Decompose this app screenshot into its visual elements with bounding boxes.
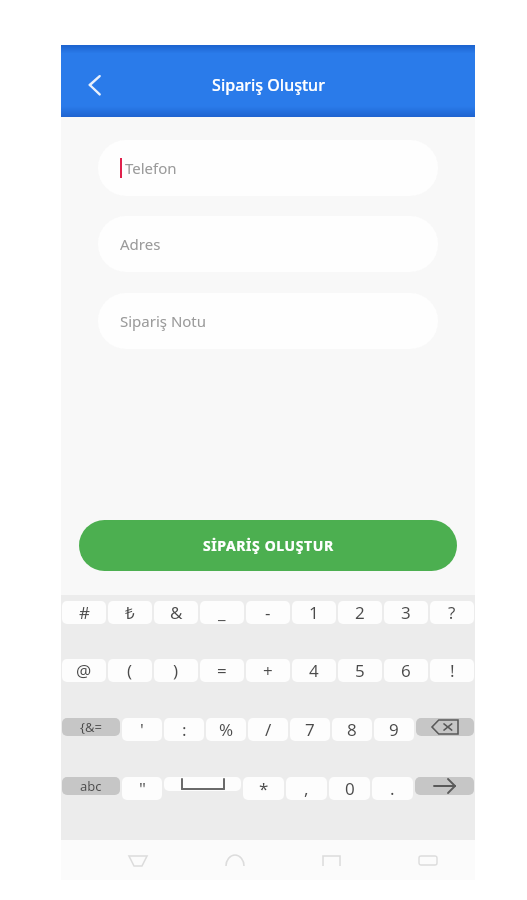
staticText: " <box>139 777 146 800</box>
button[interactable]: & <box>154 601 198 624</box>
button[interactable]: 9 <box>374 718 414 741</box>
button[interactable]: Sipariş Notu <box>98 293 438 349</box>
button[interactable]: . <box>372 777 413 800</box>
button[interactable]: 8 <box>332 718 372 741</box>
button[interactable]: _ <box>200 601 244 624</box>
button[interactable]: ! <box>430 659 474 682</box>
staticText: _ <box>218 601 226 624</box>
staticText: Telefon <box>125 158 177 178</box>
staticText: 0 <box>345 777 355 800</box>
staticText: ? <box>448 601 456 624</box>
button[interactable]: % <box>206 718 246 741</box>
button[interactable]: = <box>200 659 244 682</box>
staticText: , <box>304 777 309 800</box>
staticText: 3 <box>401 601 411 624</box>
button[interactable]: / <box>248 718 288 741</box>
button[interactable]: Back <box>121 850 155 870</box>
button[interactable]: {&= <box>62 718 120 736</box>
button[interactable]: 1 <box>292 601 336 624</box>
staticText: 1 <box>309 601 319 624</box>
button[interactable]: 2 <box>338 601 382 624</box>
button[interactable]: abc <box>62 777 120 795</box>
button[interactable]: ) <box>154 659 198 682</box>
staticText: @ <box>76 659 92 682</box>
staticText: = <box>217 659 227 682</box>
button[interactable]: Space <box>164 777 241 791</box>
staticText: ) <box>173 659 179 682</box>
button[interactable]: 7 <box>290 718 330 741</box>
button[interactable]: 3 <box>384 601 428 624</box>
staticText: ! <box>450 659 455 682</box>
button[interactable]: Back <box>69 59 121 111</box>
staticText: Adres <box>120 234 161 254</box>
staticText: 7 <box>305 718 315 741</box>
button[interactable]: ₺ <box>108 601 152 624</box>
button[interactable]: ' <box>122 718 162 741</box>
staticText: . <box>390 777 395 800</box>
staticText: - <box>265 601 271 624</box>
button[interactable]: * <box>243 777 284 800</box>
staticText: : <box>182 718 187 741</box>
button[interactable]: Recents <box>314 850 348 870</box>
staticText: % <box>219 718 234 741</box>
button[interactable]: Backspace <box>416 718 474 736</box>
staticText: Sipariş Oluştur <box>212 74 325 96</box>
staticText: 9 <box>389 718 399 741</box>
button[interactable]: ( <box>108 659 152 682</box>
staticText: 2 <box>355 601 365 624</box>
button[interactable]: + <box>246 659 290 682</box>
button[interactable]: 4 <box>292 659 336 682</box>
button[interactable]: Telefon <box>98 140 438 196</box>
staticText: 8 <box>347 718 357 741</box>
staticText: {&= <box>80 718 102 736</box>
button[interactable]: Enter <box>415 777 474 795</box>
button[interactable]: - <box>246 601 290 624</box>
staticText: 4 <box>309 659 319 682</box>
staticText: Sipariş Notu <box>120 311 207 331</box>
button[interactable]: " <box>122 777 162 800</box>
staticText: ' <box>140 718 144 741</box>
staticText: 6 <box>401 659 411 682</box>
staticText: abc <box>80 777 102 795</box>
button[interactable]: Keyboard <box>411 850 445 870</box>
button[interactable]: 5 <box>338 659 382 682</box>
button[interactable]: SİPARİŞ OLUŞTUR <box>79 520 457 571</box>
button[interactable]: Home <box>218 850 252 870</box>
staticText: & <box>170 601 183 624</box>
staticText: ₺ <box>125 601 135 624</box>
button[interactable]: @ <box>62 659 106 682</box>
staticText: ( <box>127 659 133 682</box>
staticText: + <box>263 659 273 682</box>
button[interactable]: , <box>286 777 327 800</box>
staticText: SİPARİŞ OLUŞTUR <box>203 536 334 555</box>
button[interactable]: ? <box>430 601 474 624</box>
button[interactable]: Adres <box>98 216 438 272</box>
staticText: 5 <box>355 659 365 682</box>
staticText: * <box>259 777 269 800</box>
staticText: # <box>79 601 90 624</box>
button[interactable]: 0 <box>329 777 370 800</box>
button[interactable]: # <box>62 601 106 624</box>
button[interactable]: : <box>164 718 204 741</box>
button[interactable]: 6 <box>384 659 428 682</box>
staticText: / <box>265 718 272 741</box>
